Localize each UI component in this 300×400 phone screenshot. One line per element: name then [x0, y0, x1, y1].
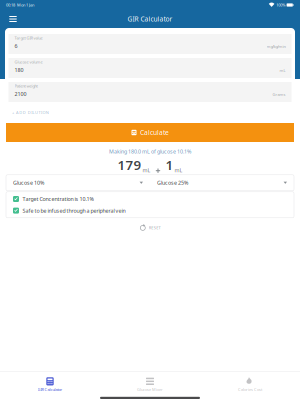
- button[interactable]: Menu: [4, 10, 22, 28]
- staticText: 180: [14, 66, 23, 74]
- staticText: mL: [141, 167, 150, 174]
- staticText: Grams: [272, 92, 285, 97]
- staticText: GIR Calculator: [127, 15, 172, 23]
- staticText: Calculate: [140, 128, 169, 137]
- staticText: Safe to be infused through a peripheral …: [22, 207, 125, 214]
- staticText: Glucose volume: [14, 59, 42, 65]
- staticText: 00:18: [6, 2, 15, 8]
- staticText: Glucose Mixer: [137, 387, 163, 392]
- staticText: Patient weight: [14, 83, 37, 89]
- staticText: Mon 1 Jan: [15, 2, 34, 8]
- staticText: 100%: [275, 2, 285, 8]
- staticText: Glucose 25%: [157, 179, 188, 186]
- button[interactable]: Glucose Mixer: [100, 372, 200, 391]
- button[interactable]: GIR Calculator: [0, 372, 100, 391]
- staticText: + ADD DILUTION: [12, 110, 49, 115]
- staticText: Target GIR value: [14, 35, 42, 41]
- button[interactable]: Glucose 25%: [150, 177, 294, 188]
- staticText: Target Concentration is 10.1%: [22, 195, 93, 203]
- staticText: Calories Cost: [238, 387, 262, 392]
- staticText: 179: [117, 156, 141, 174]
- button[interactable]: RESET: [0, 220, 300, 236]
- staticText: Glucose 10%: [13, 179, 44, 186]
- staticText: 6: [14, 42, 17, 50]
- staticText: RESET: [149, 225, 161, 230]
- button[interactable]: Calories Cost: [200, 372, 300, 391]
- staticText: mg/kg/min: [266, 44, 285, 49]
- staticText: 1: [165, 156, 173, 174]
- staticText: mL: [173, 167, 182, 174]
- staticText: mL: [279, 68, 285, 73]
- button[interactable]: Calculate: [6, 123, 294, 142]
- button[interactable]: + ADD DILUTION: [5, 102, 295, 123]
- staticText: Making 180.0 mL of glucose 10.1%: [109, 148, 191, 155]
- staticText: 2100: [14, 90, 26, 98]
- button[interactable]: Glucose 10%: [6, 177, 150, 188]
- staticText: GIR Calculator: [37, 387, 62, 392]
